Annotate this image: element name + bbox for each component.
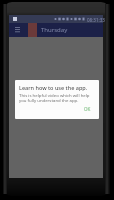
staticText: OK [84,106,91,112]
staticText: 08:31:33 [87,17,105,23]
staticText: Thursday [41,26,68,34]
staticText: Learn how to use the app. [19,84,88,91]
button[interactable]: Open navigation menu [11,23,24,36]
button[interactable]: OK [81,104,94,114]
staticText: This is helpful video which will help yo… [19,92,90,103]
